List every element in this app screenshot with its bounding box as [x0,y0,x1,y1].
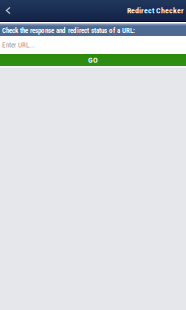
button[interactable]: GO [0,54,186,66]
button[interactable]: Back [0,0,16,21]
staticText: GO [88,55,98,65]
staticText: Enter URL... [2,41,35,49]
staticText: Check the response and redirect status o… [2,26,135,35]
staticText: Redirect Checker [127,6,184,15]
